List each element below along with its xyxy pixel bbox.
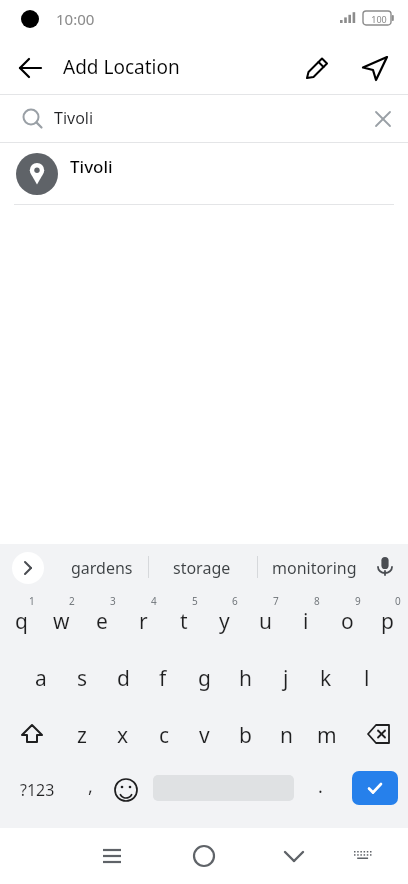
staticText: x: [117, 721, 129, 750]
button[interactable]: s: [62, 648, 102, 705]
staticText: v: [199, 721, 210, 750]
staticText: e: [96, 607, 108, 636]
button[interactable]: Edit: [297, 48, 337, 88]
staticText: j: [283, 664, 289, 693]
staticText: q: [15, 607, 28, 636]
button[interactable]: Tivoli: [0, 143, 408, 205]
button[interactable]: k: [306, 648, 346, 705]
button[interactable]: y: [204, 591, 244, 648]
button[interactable]: z: [62, 705, 102, 762]
staticText: z: [77, 721, 87, 750]
button[interactable]: m: [307, 705, 347, 762]
button[interactable]: t: [164, 591, 204, 648]
button[interactable]: l: [347, 648, 387, 705]
button[interactable]: a: [21, 648, 61, 705]
button[interactable]: Back: [10, 47, 52, 89]
staticText: 5: [192, 594, 198, 608]
button[interactable]: v: [184, 705, 224, 762]
staticText: 8: [314, 594, 320, 608]
button[interactable]: u: [245, 591, 285, 648]
staticText: k: [320, 664, 332, 693]
staticText: 7: [273, 594, 279, 608]
staticText: h: [239, 664, 252, 693]
staticText: .: [318, 774, 323, 799]
button[interactable]: Hide keyboard: [274, 836, 314, 876]
button[interactable]: r: [123, 591, 163, 648]
button[interactable]: .: [300, 762, 340, 818]
staticText: Tivoli: [70, 155, 113, 178]
staticText: w: [53, 607, 70, 636]
button[interactable]: i: [286, 591, 326, 648]
button[interactable]: c: [144, 705, 184, 762]
staticText: p: [381, 607, 394, 636]
button[interactable]: Navigate: [355, 48, 397, 90]
button[interactable]: n: [266, 705, 306, 762]
staticText: 9: [355, 594, 361, 608]
button[interactable]: g: [184, 648, 224, 705]
button[interactable]: Voice input: [368, 550, 402, 584]
button[interactable]: monitoring: [262, 544, 366, 591]
staticText: ?123: [20, 779, 55, 801]
button[interactable]: Home: [184, 836, 224, 876]
staticText: s: [77, 664, 88, 693]
staticText: storage: [173, 557, 231, 579]
staticText: Tivoli: [54, 107, 94, 129]
staticText: 100: [367, 13, 391, 25]
button[interactable]: ?123: [6, 762, 68, 818]
staticText: y: [219, 607, 230, 636]
staticText: a: [35, 664, 47, 693]
button[interactable]: p: [367, 591, 407, 648]
staticText: n: [280, 721, 293, 750]
staticText: b: [239, 721, 252, 750]
button[interactable]: Emoji: [104, 762, 148, 818]
button[interactable]: d: [103, 648, 143, 705]
button[interactable]: w: [41, 591, 81, 648]
button[interactable]: Done: [352, 771, 398, 805]
staticText: 0: [395, 594, 401, 608]
button[interactable]: storage: [157, 544, 247, 591]
staticText: u: [259, 607, 272, 636]
staticText: 4: [151, 594, 157, 608]
button[interactable]: gardens: [54, 544, 149, 591]
button[interactable]: Switch keyboard: [344, 836, 384, 876]
button[interactable]: e: [82, 591, 122, 648]
staticText: 1: [29, 594, 35, 608]
button[interactable]: Clear: [366, 102, 400, 136]
staticText: f: [159, 664, 167, 693]
staticText: r: [139, 607, 148, 636]
button[interactable]: Backspace: [352, 705, 400, 762]
staticText: ,: [88, 774, 93, 799]
button[interactable]: f: [143, 648, 183, 705]
button[interactable]: ,: [68, 762, 112, 818]
staticText: i: [303, 607, 309, 636]
staticText: 3: [110, 594, 116, 608]
staticText: d: [117, 664, 130, 693]
staticText: o: [341, 607, 354, 636]
staticText: g: [198, 664, 211, 693]
staticText: 2: [69, 594, 75, 608]
button[interactable]: o: [327, 591, 367, 648]
staticText: m: [317, 721, 337, 750]
button[interactable]: q: [1, 591, 41, 648]
staticText: gardens: [71, 557, 133, 579]
button[interactable]: b: [225, 705, 265, 762]
staticText: Add Location: [63, 54, 180, 80]
button[interactable]: h: [225, 648, 265, 705]
staticText: t: [180, 607, 188, 636]
button[interactable]: Expand suggestions: [12, 552, 44, 584]
staticText: c: [159, 721, 170, 750]
button[interactable]: j: [266, 648, 306, 705]
button[interactable]: Recent apps: [92, 836, 132, 876]
staticText: 6: [232, 594, 238, 608]
staticText: 10:00: [56, 9, 95, 29]
staticText: monitoring: [272, 557, 357, 579]
button[interactable]: x: [103, 705, 143, 762]
button[interactable]: Shift: [8, 705, 56, 762]
staticText: l: [364, 664, 370, 693]
